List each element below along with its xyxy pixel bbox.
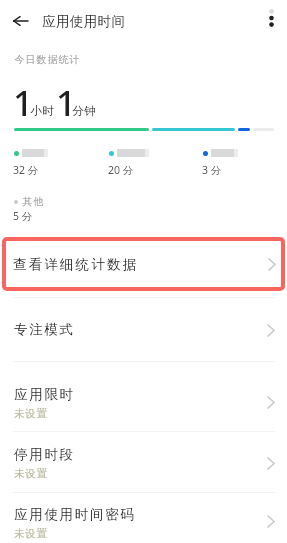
staticText: 3 分	[202, 163, 222, 177]
button[interactable]: 专注模式	[0, 297, 287, 361]
staticText: 专注模式	[14, 321, 75, 338]
staticText: 应用限时	[14, 386, 75, 403]
staticText: 应用使用时间	[42, 13, 126, 30]
button[interactable]: 应用使用时间密码	[0, 492, 287, 543]
button[interactable]: 查看详细统计数据	[2, 237, 285, 291]
staticText: 32 分	[13, 163, 39, 177]
staticText: 未设置	[14, 407, 48, 420]
button[interactable]: More options	[257, 2, 286, 31]
staticText: 应用使用时间密码	[14, 506, 136, 523]
button[interactable]: Back	[6, 6, 35, 35]
staticText: 分钟	[72, 104, 96, 118]
staticText: 未设置	[14, 527, 48, 540]
button[interactable]: 应用限时	[0, 361, 287, 431]
staticText: 5 分	[13, 209, 33, 223]
staticText: 20 分	[108, 163, 134, 177]
staticText: 未设置	[14, 467, 48, 480]
staticText: 今日数据统计	[14, 53, 80, 66]
button[interactable]: 停用时段	[0, 431, 287, 492]
staticText: 其他	[22, 195, 44, 208]
staticText: 停用时段	[14, 446, 75, 463]
staticText: 查看详细统计数据	[13, 256, 139, 273]
staticText: 1	[56, 79, 77, 127]
staticText: 1	[13, 79, 34, 127]
staticText: 小时	[30, 104, 54, 118]
